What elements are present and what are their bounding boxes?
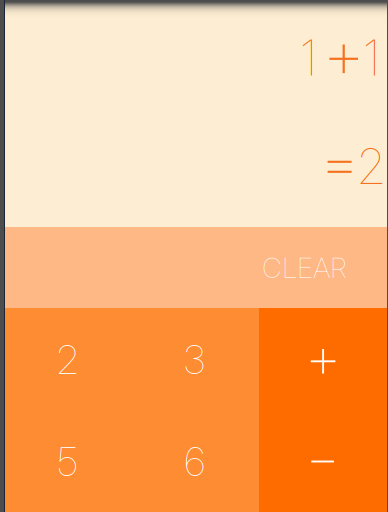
button[interactable]: 6 xyxy=(131,411,258,512)
button[interactable]: CLEAR xyxy=(5,227,387,308)
staticText: CLEAR xyxy=(262,251,347,284)
button[interactable]: Add xyxy=(259,308,387,410)
button[interactable]: 3 xyxy=(131,309,258,411)
button[interactable]: 5 xyxy=(4,411,131,512)
staticText: 3 xyxy=(184,337,205,383)
staticText: 1 xyxy=(300,28,318,87)
staticText: 5 xyxy=(57,439,77,485)
staticText: 2 xyxy=(57,337,78,383)
staticText: 1 xyxy=(362,28,380,87)
button[interactable]: Subtract xyxy=(259,410,387,512)
staticText: 2 xyxy=(356,136,387,196)
staticText: 6 xyxy=(184,439,204,485)
button[interactable]: 2 xyxy=(4,309,131,411)
